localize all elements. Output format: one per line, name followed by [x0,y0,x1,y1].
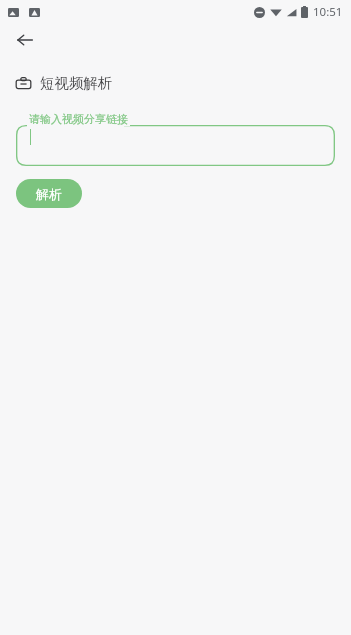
staticText: 解析 [36,186,62,202]
button[interactable]: 解析 [16,179,82,208]
staticText: 短视频解析 [40,74,113,92]
button[interactable]: Back [9,24,41,56]
staticText: 10:51 [313,4,343,20]
button[interactable]: 请输入视频分享链接 [16,118,335,166]
staticText: 请输入视频分享链接 [29,112,128,126]
